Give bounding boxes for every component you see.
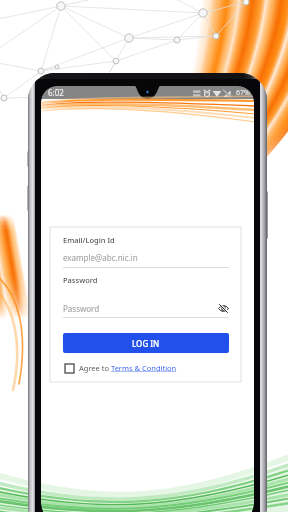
staticText: Email/Login Id bbox=[63, 235, 115, 245]
button[interactable]: Show password bbox=[217, 302, 229, 314]
staticText: LOG IN bbox=[132, 338, 160, 349]
staticText: 67% bbox=[236, 88, 250, 98]
staticText: 6:02 bbox=[48, 87, 64, 98]
staticText: example@abc.nic.in bbox=[63, 252, 138, 263]
staticText: Agree to bbox=[79, 363, 111, 373]
staticText: Password bbox=[63, 303, 217, 314]
staticText: Password bbox=[63, 275, 98, 285]
button[interactable]: LOG IN bbox=[63, 333, 229, 353]
staticText: Terms & Condition bbox=[111, 363, 177, 373]
button[interactable]: Agree to bbox=[65, 363, 177, 373]
